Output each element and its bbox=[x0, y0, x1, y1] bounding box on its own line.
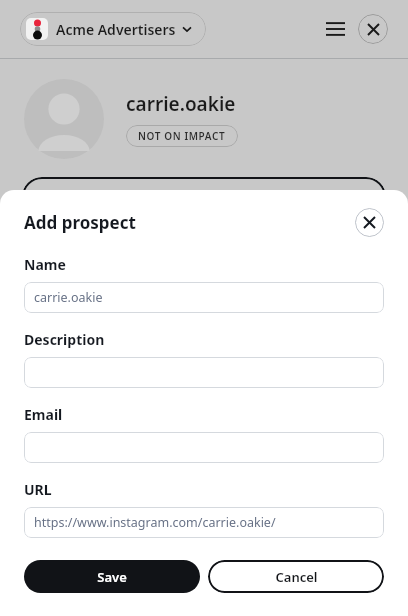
button[interactable] bbox=[24, 357, 384, 388]
staticText: Save bbox=[97, 568, 127, 586]
button[interactable]: Menu bbox=[320, 14, 350, 44]
staticText: URL bbox=[24, 480, 52, 499]
staticText: Acme Advertisers bbox=[56, 20, 176, 39]
staticText: carrie.oakie bbox=[126, 91, 236, 117]
staticText: Message bbox=[174, 188, 234, 207]
staticText: Add prospect bbox=[24, 211, 355, 234]
staticText: NOT ON IMPACT bbox=[138, 129, 226, 143]
staticText: https://www.instagram.com/carrie.oakie/ bbox=[34, 514, 276, 531]
button[interactable]: https://www.instagram.com/carrie.oakie/ bbox=[24, 507, 384, 538]
staticText: Email bbox=[24, 405, 63, 424]
staticText: Description bbox=[24, 330, 105, 349]
button[interactable]: Acme Advertisers bbox=[20, 12, 206, 46]
staticText: carrie.oakie bbox=[34, 289, 103, 306]
staticText: Name bbox=[24, 255, 66, 274]
button[interactable]: Message bbox=[22, 177, 386, 217]
button[interactable]: Save bbox=[24, 560, 200, 593]
button[interactable]: Close bbox=[358, 14, 388, 44]
button[interactable]: NOT ON IMPACT bbox=[126, 125, 238, 147]
button[interactable]: Cancel bbox=[208, 560, 384, 593]
staticText: Cancel bbox=[275, 568, 318, 586]
button[interactable] bbox=[24, 432, 384, 463]
button[interactable]: Close dialog bbox=[355, 208, 384, 237]
button[interactable]: carrie.oakie bbox=[24, 282, 384, 313]
